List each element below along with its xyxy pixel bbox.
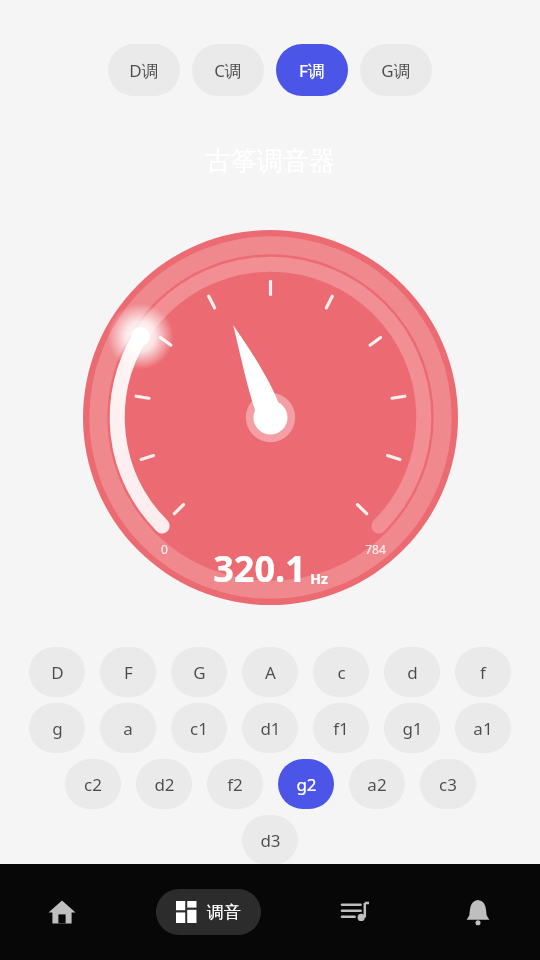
button[interactable]: a2 [349, 759, 405, 809]
button[interactable]: f2 [207, 759, 263, 809]
staticText: 古筝调音器 [205, 145, 335, 178]
button[interactable]: c [313, 647, 369, 697]
staticText: 320.1 [213, 544, 306, 593]
staticText: D [51, 661, 64, 684]
button[interactable]: f [455, 647, 511, 697]
staticText: a [123, 717, 133, 740]
staticText: 784 [365, 541, 386, 557]
button[interactable]: A [242, 647, 298, 697]
staticText: 0 [161, 541, 168, 557]
staticText: a1 [473, 717, 493, 740]
staticText: G调 [381, 59, 411, 82]
staticText: C调 [214, 59, 242, 82]
staticText: a2 [367, 773, 387, 796]
staticText: d1 [260, 717, 281, 740]
button[interactable]: c2 [65, 759, 121, 809]
button[interactable]: d3 [242, 815, 298, 865]
button[interactable]: g1 [384, 703, 440, 753]
button[interactable]: F [100, 647, 156, 697]
staticText: d2 [154, 773, 175, 796]
staticText: 调音 [207, 902, 241, 923]
button[interactable]: c1 [171, 703, 227, 753]
button[interactable]: G [171, 647, 227, 697]
button[interactable]: Home [0, 864, 124, 960]
button[interactable]: d [384, 647, 440, 697]
staticText: g1 [402, 717, 423, 740]
button[interactable]: Playlist [292, 864, 416, 960]
button[interactable]: d1 [242, 703, 298, 753]
button[interactable]: D调 [108, 44, 180, 96]
staticText: f2 [227, 773, 243, 796]
button[interactable]: D [29, 647, 85, 697]
staticText: d3 [260, 829, 281, 852]
button[interactable]: F调 [276, 44, 348, 96]
staticText: A [265, 661, 276, 684]
button[interactable]: f1 [313, 703, 369, 753]
staticText: f1 [333, 717, 349, 740]
staticText: F [124, 661, 133, 684]
staticText: Hz [310, 569, 328, 588]
staticText: G [193, 661, 206, 684]
button[interactable]: G调 [360, 44, 432, 96]
staticText: d [407, 661, 418, 684]
staticText: c [337, 661, 346, 684]
staticText: g2 [296, 773, 317, 796]
staticText: D调 [129, 59, 159, 82]
button[interactable]: a [100, 703, 156, 753]
button[interactable]: d2 [136, 759, 192, 809]
button[interactable]: C调 [192, 44, 264, 96]
button[interactable]: c3 [420, 759, 476, 809]
staticText: c1 [190, 717, 208, 740]
button[interactable]: a1 [455, 703, 511, 753]
button[interactable]: 调音 [156, 889, 261, 935]
button[interactable]: g2 [278, 759, 334, 809]
button[interactable]: Notifications [416, 864, 540, 960]
staticText: g [52, 717, 63, 740]
staticText: f [480, 661, 486, 684]
button[interactable]: g [29, 703, 85, 753]
staticText: c2 [84, 773, 102, 796]
staticText: c3 [439, 773, 457, 796]
staticText: F调 [299, 59, 325, 82]
